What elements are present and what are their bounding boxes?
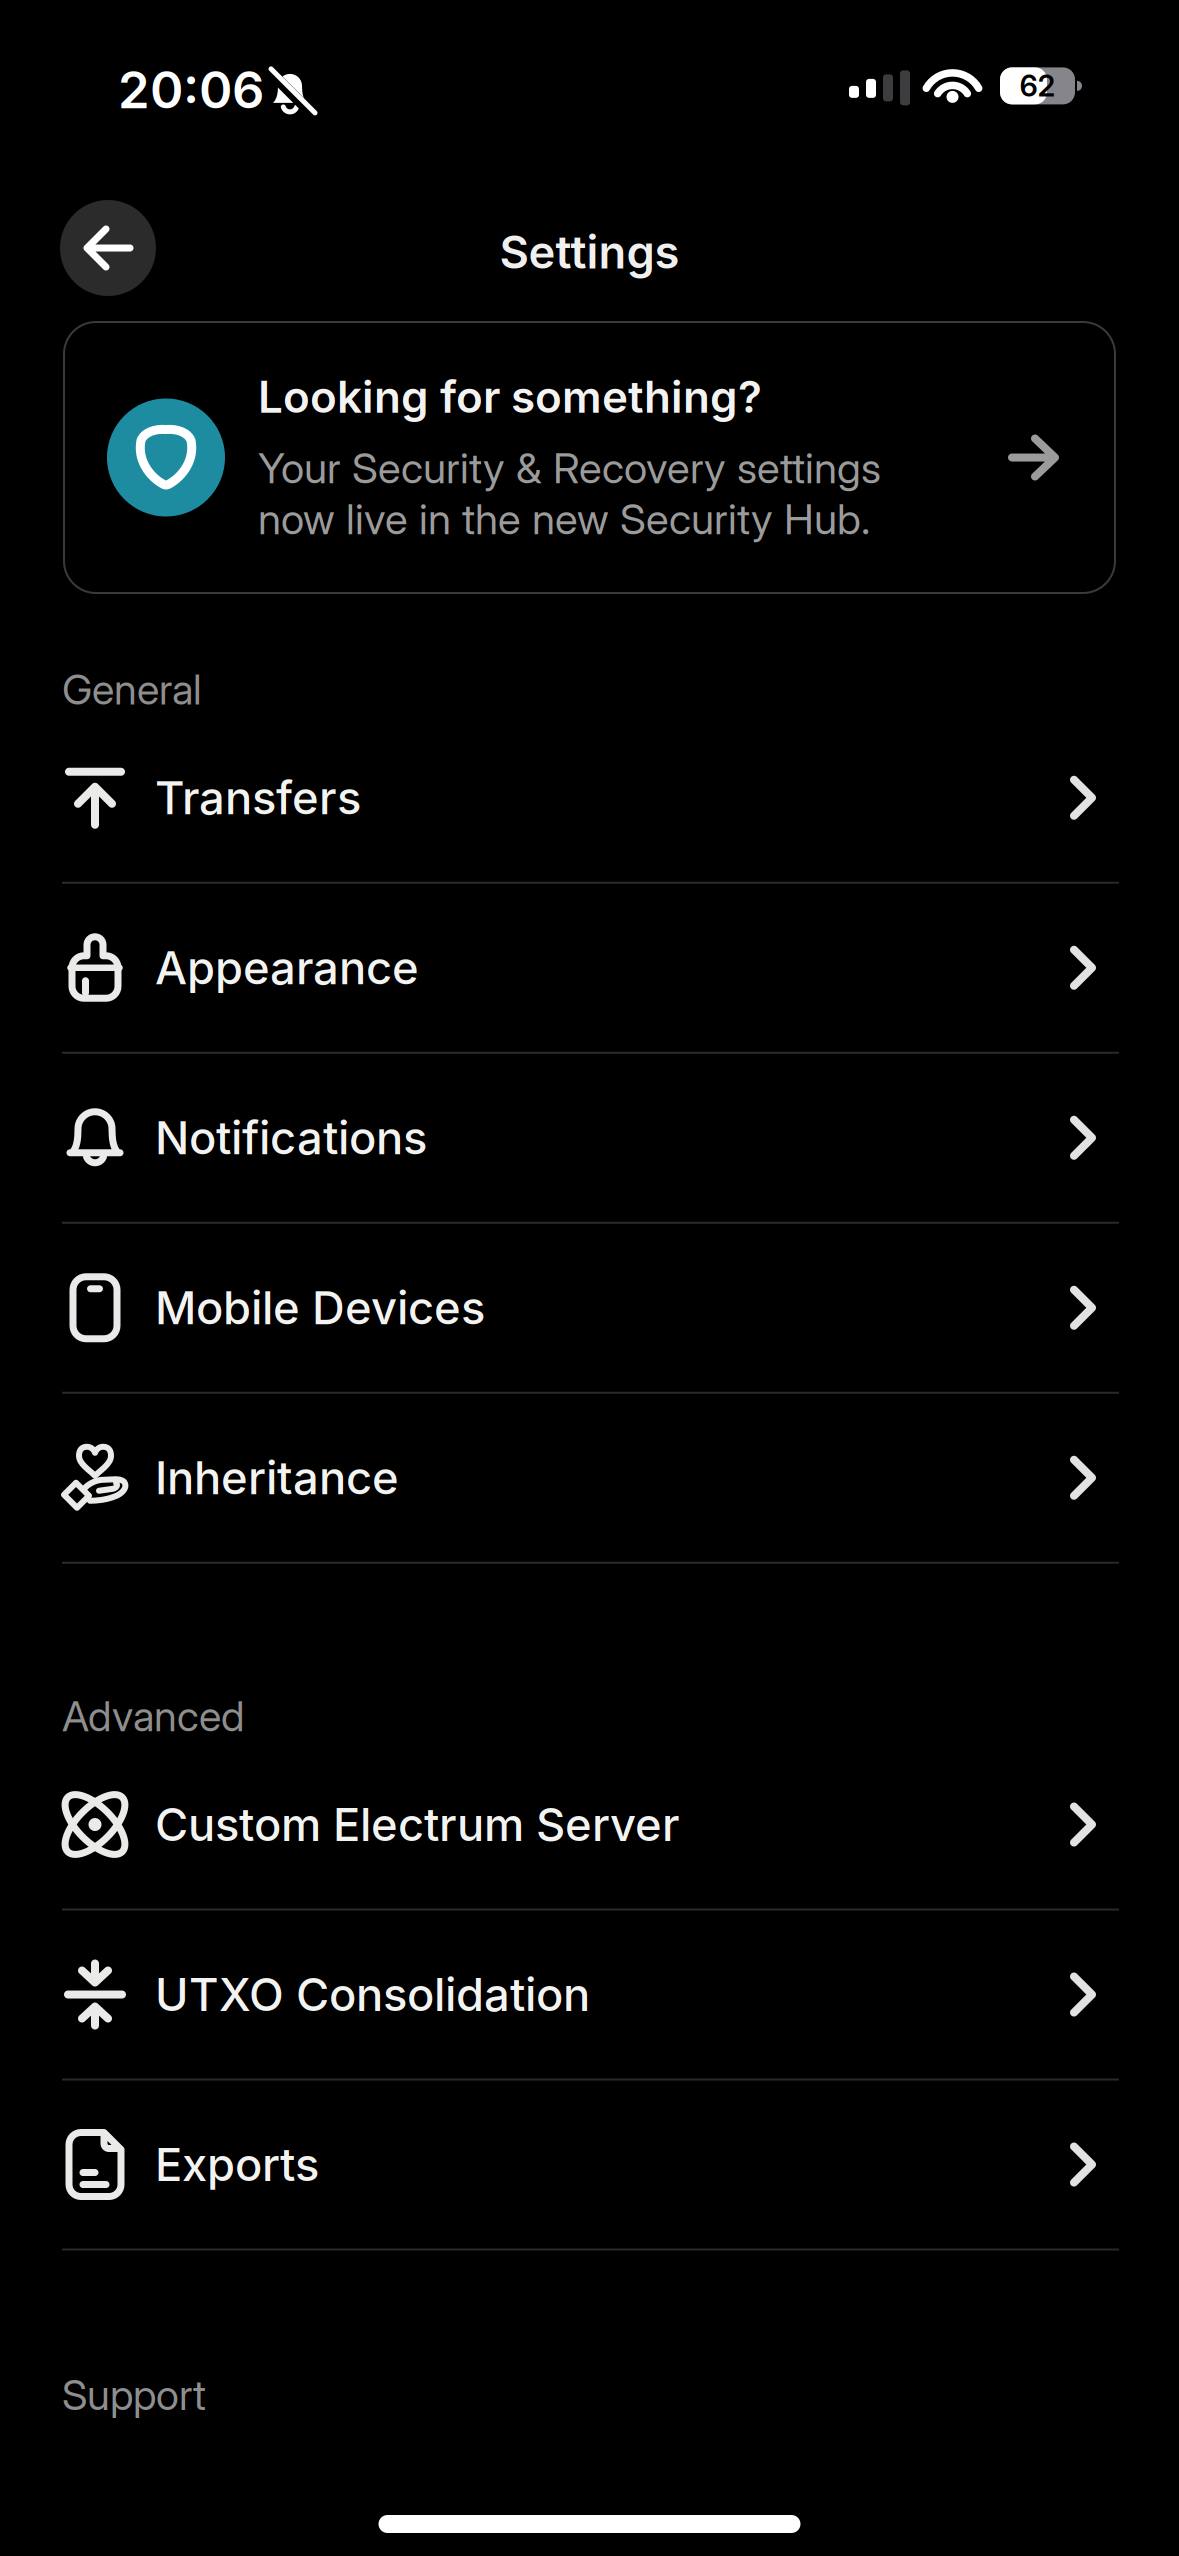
button[interactable]: Exports <box>0 2080 1179 2248</box>
staticText: Mobile Devices <box>155 1281 485 1334</box>
staticText: Transfers <box>155 771 361 824</box>
button[interactable]: Appearance <box>0 884 1179 1052</box>
button[interactable]: UTXO Consolidation <box>0 1910 1179 2078</box>
staticText: Exports <box>155 2138 319 2191</box>
staticText: 20:06 <box>118 60 264 120</box>
staticText: Settings <box>499 225 679 279</box>
staticText: UTXO Consolidation <box>155 1968 590 2021</box>
button[interactable]: Inheritance <box>0 1394 1179 1562</box>
staticText: Appearance <box>155 941 419 994</box>
staticText: Looking for something? <box>258 371 762 423</box>
staticText: Notifications <box>155 1111 427 1164</box>
button[interactable]: Transfers <box>0 714 1179 882</box>
button[interactable]: Custom Electrum Server <box>0 1740 1179 1908</box>
staticText: Advanced <box>62 1692 244 1741</box>
button[interactable] <box>60 200 156 296</box>
staticText: General <box>62 665 202 714</box>
button[interactable]: Looking for something? <box>64 322 1115 593</box>
staticText: Inheritance <box>155 1451 399 1504</box>
button[interactable]: Mobile Devices <box>0 1224 1179 1392</box>
staticText: Support <box>62 2370 206 2419</box>
staticText: 62 <box>1019 69 1055 103</box>
button[interactable]: Notifications <box>0 1054 1179 1222</box>
staticText: Custom Electrum Server <box>155 1798 680 1851</box>
staticText: Your Security & Recovery settings now li… <box>258 443 881 544</box>
